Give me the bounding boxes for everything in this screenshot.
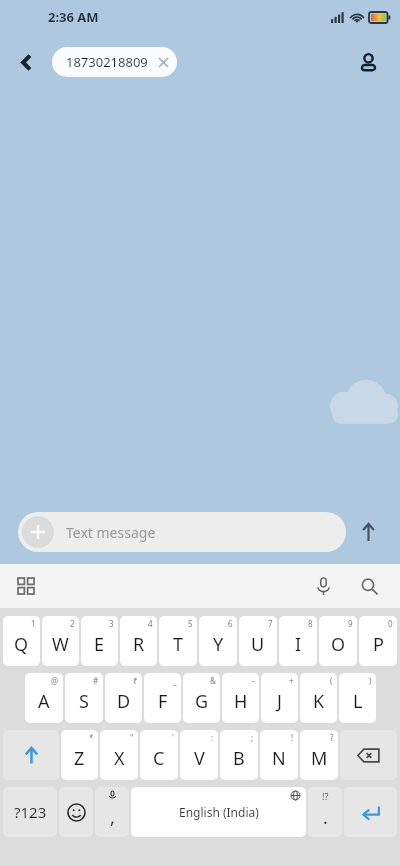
button[interactable]: Emoji <box>59 787 93 837</box>
staticText: 2 <box>70 618 75 629</box>
staticText: ( <box>330 675 333 686</box>
staticText: 5 <box>188 618 193 629</box>
staticText: E <box>94 632 105 657</box>
staticText: V <box>194 746 205 771</box>
staticText: B <box>233 746 245 771</box>
staticText: * <box>89 732 94 743</box>
staticText: ? <box>330 732 334 743</box>
button[interactable]: ₹ <box>105 673 142 723</box>
staticText: & <box>210 675 216 686</box>
button[interactable]: 7 <box>239 616 277 666</box>
staticText: A <box>38 689 50 714</box>
staticText: !? <box>322 790 329 802</box>
staticText: 1 <box>31 618 36 629</box>
button[interactable]: 0 <box>359 616 397 666</box>
button[interactable]: Keyboard modes <box>8 568 44 604</box>
button[interactable]: Backspace <box>340 730 397 780</box>
button[interactable]: Enter <box>344 787 397 837</box>
staticText: Y <box>213 632 224 657</box>
button[interactable]: 5 <box>159 616 197 666</box>
staticText: ) <box>369 675 372 686</box>
staticText: , <box>110 805 115 830</box>
staticText: ! <box>291 732 294 743</box>
button[interactable]: ! <box>260 730 298 780</box>
button[interactable]: English (India) <box>131 787 306 837</box>
staticText: @ <box>51 675 59 686</box>
staticText: C <box>153 746 165 771</box>
button[interactable]: 3 <box>81 616 118 666</box>
staticText: Z <box>74 746 85 771</box>
button[interactable]: 18730218809 <box>52 47 177 77</box>
staticText: Q <box>14 632 29 657</box>
button[interactable]: 8 <box>279 616 317 666</box>
button[interactable]: Contact details <box>348 42 388 82</box>
staticText: 0 <box>388 618 393 629</box>
staticText: Text message <box>66 523 156 542</box>
staticText: O <box>331 632 346 657</box>
button[interactable]: 4 <box>120 616 157 666</box>
staticText: 9 <box>348 618 353 629</box>
staticText: N <box>272 746 286 771</box>
button[interactable]: Search <box>350 567 388 605</box>
staticText: English (India) <box>179 804 259 820</box>
button[interactable]: 1 <box>3 616 40 666</box>
staticText: ₹ <box>133 675 138 686</box>
staticText: T <box>173 632 184 657</box>
button[interactable]: Back <box>6 42 46 82</box>
button[interactable]: # <box>65 673 103 723</box>
button[interactable]: 2 <box>42 616 79 666</box>
button[interactable]: Shift <box>3 730 59 780</box>
staticText: F <box>158 689 168 714</box>
staticText: U <box>251 632 265 657</box>
staticText: R <box>133 632 145 657</box>
staticText: H <box>234 689 248 714</box>
button[interactable]: " <box>100 730 138 780</box>
button[interactable]: _ <box>144 673 181 723</box>
button[interactable]: Voice input <box>304 567 342 605</box>
button[interactable]: ) <box>339 673 376 723</box>
button[interactable]: !? <box>308 787 342 837</box>
staticText: # <box>93 675 99 686</box>
staticText: 7 <box>268 618 273 629</box>
button[interactable]: 6 <box>199 616 237 666</box>
button[interactable]: 9 <box>319 616 357 666</box>
staticText: 2:36 AM <box>48 8 99 26</box>
staticText: ?123 <box>14 802 47 822</box>
button[interactable]: Add attachment <box>18 512 346 552</box>
staticText: . <box>323 805 328 830</box>
staticText: 18730218809 <box>66 53 148 71</box>
staticText: X <box>114 746 125 771</box>
button[interactable]: , <box>95 787 129 837</box>
staticText: I <box>295 632 302 657</box>
staticText: D <box>117 689 131 714</box>
staticText: 4 <box>148 618 153 629</box>
staticText: K <box>313 689 325 714</box>
staticText: ; <box>251 732 254 743</box>
staticText: S <box>79 689 89 714</box>
button[interactable]: : <box>180 730 218 780</box>
button[interactable]: & <box>183 673 220 723</box>
staticText: J <box>277 689 282 714</box>
staticText: P <box>373 632 384 657</box>
staticText: : <box>211 732 214 743</box>
button[interactable]: Add attachment <box>22 516 54 548</box>
staticText: ' <box>172 732 174 743</box>
button[interactable]: @ <box>25 673 63 723</box>
button[interactable]: ?123 <box>3 787 57 837</box>
staticText: L <box>353 689 363 714</box>
button[interactable]: ? <box>300 730 338 780</box>
button[interactable]: ( <box>300 673 337 723</box>
button[interactable]: ' <box>140 730 178 780</box>
button[interactable]: ; <box>220 730 258 780</box>
staticText: " <box>130 732 134 743</box>
button[interactable]: * <box>61 730 98 780</box>
staticText: - <box>252 675 255 686</box>
button[interactable]: + <box>261 673 298 723</box>
staticText: _ <box>173 675 177 686</box>
staticText: 6 <box>228 618 233 629</box>
staticText: + <box>289 675 294 686</box>
staticText: W <box>52 632 69 657</box>
staticText: M <box>311 746 328 771</box>
button[interactable]: Send <box>346 510 390 554</box>
button[interactable]: - <box>222 673 259 723</box>
